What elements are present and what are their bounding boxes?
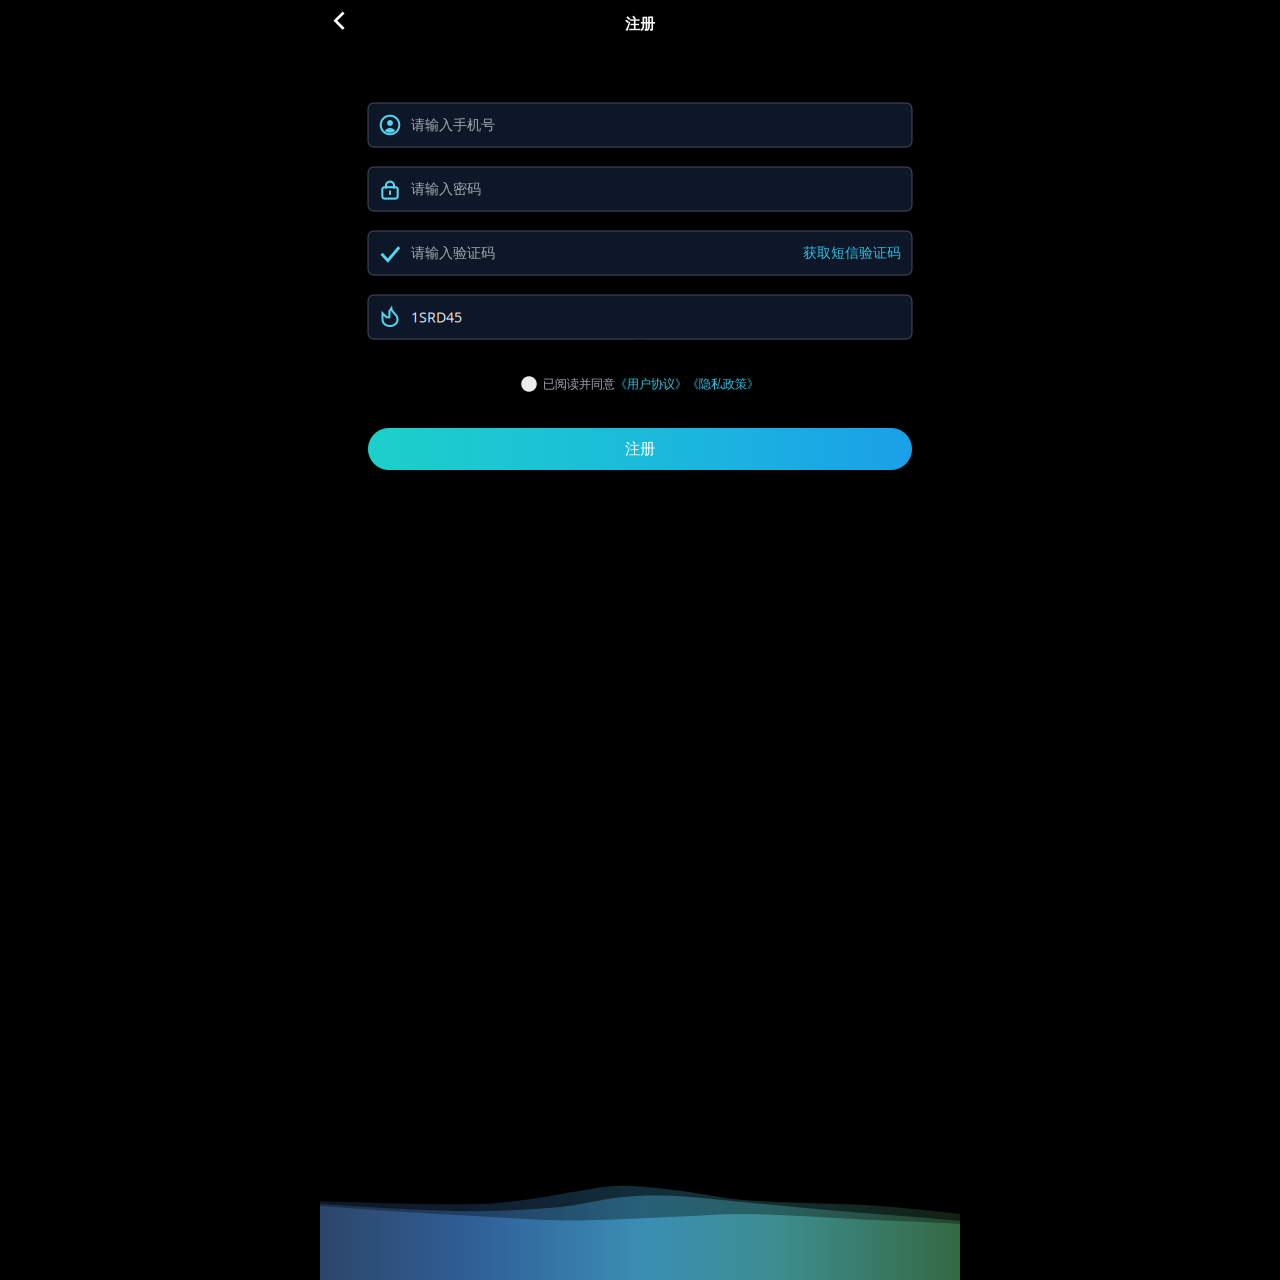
button[interactable]: 注册 <box>368 428 912 470</box>
staticText: 请输入手机号 <box>411 116 495 134</box>
staticText: 《隐私政策》 <box>687 376 759 392</box>
button[interactable]: 获取短信验证码 <box>803 244 901 262</box>
staticText: 获取短信验证码 <box>803 244 901 262</box>
button[interactable]: 请输入验证码 <box>368 231 912 275</box>
staticText: 请输入验证码 <box>411 244 495 262</box>
button[interactable]: 《隐私政策》 <box>687 376 759 392</box>
staticText: 已阅读并同意 <box>543 376 615 392</box>
staticText: 《用户协议》 <box>615 376 687 392</box>
staticText: 请输入密码 <box>411 180 481 198</box>
button[interactable]: 同意用户协议 <box>521 376 537 392</box>
button[interactable]: 请输入密码 <box>368 167 912 211</box>
button[interactable]: 1SRD45 <box>368 295 912 339</box>
button[interactable]: 返回 <box>320 2 359 46</box>
button[interactable]: 《用户协议》 <box>615 376 687 392</box>
button[interactable]: 请输入手机号 <box>368 103 912 147</box>
staticText: 注册 <box>625 439 655 459</box>
staticText: 注册 <box>625 14 655 33</box>
staticText: 1SRD45 <box>411 307 462 327</box>
